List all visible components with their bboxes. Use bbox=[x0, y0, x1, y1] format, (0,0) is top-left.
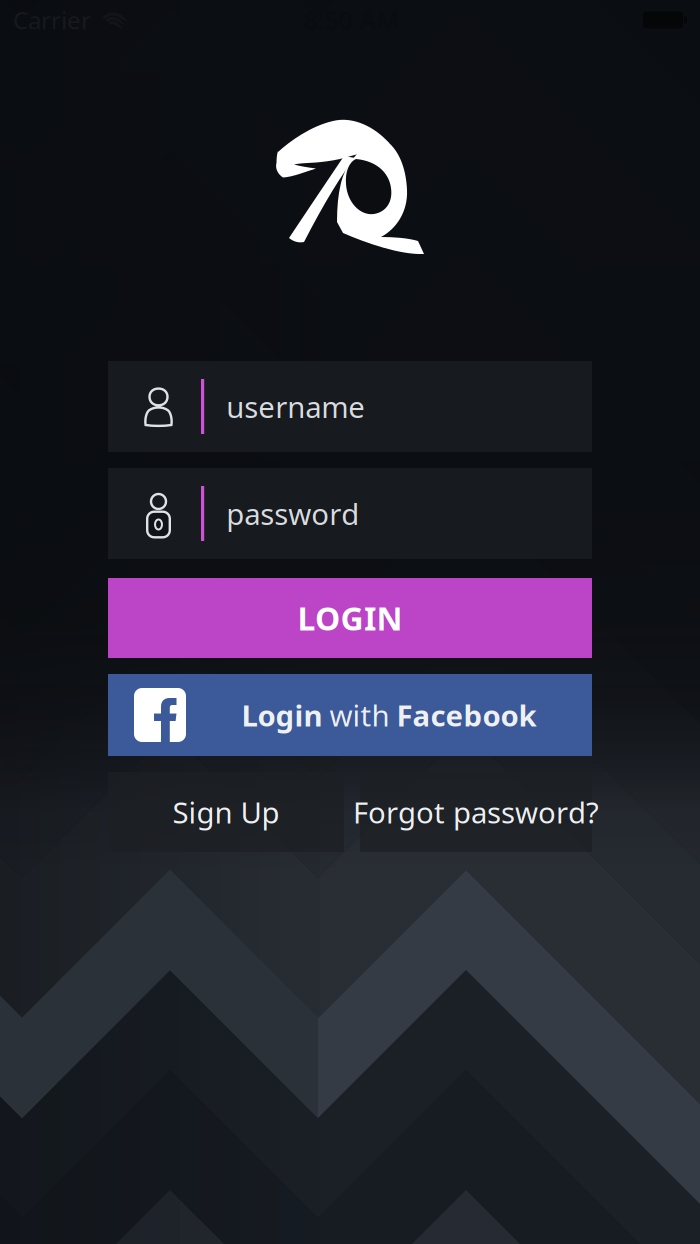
staticText: Login bbox=[241, 695, 322, 734]
staticText: Facebook bbox=[396, 695, 536, 734]
staticText: username bbox=[226, 387, 365, 426]
staticText: Carrier bbox=[13, 4, 91, 36]
button[interactable]: Sign Up bbox=[108, 772, 344, 852]
staticText: Forgot password? bbox=[353, 792, 599, 831]
staticText: Sign Up bbox=[172, 792, 279, 831]
staticText: password bbox=[226, 494, 359, 533]
button[interactable]: Forgot password? bbox=[360, 772, 592, 852]
button[interactable]: LOGIN bbox=[108, 578, 592, 658]
staticText: LOGIN bbox=[297, 597, 402, 639]
button[interactable]: Login bbox=[108, 674, 592, 756]
staticText: with bbox=[329, 695, 389, 734]
